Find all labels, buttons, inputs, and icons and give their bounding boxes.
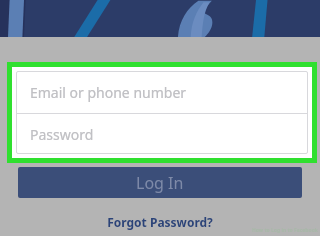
button[interactable]: Log In bbox=[18, 167, 302, 198]
other: Watermark bbox=[252, 227, 318, 234]
staticText: Email or phone number bbox=[30, 83, 187, 102]
button[interactable]: Forgot Password? bbox=[0, 212, 320, 232]
staticText: Forgot Password? bbox=[107, 214, 213, 230]
button[interactable]: Email or phone number bbox=[16, 71, 308, 113]
staticText: Log In bbox=[136, 172, 184, 194]
button[interactable]: Password bbox=[16, 114, 308, 154]
staticText: Password bbox=[30, 125, 94, 144]
staticText: How to Log in to Facebook bbox=[252, 227, 318, 234]
